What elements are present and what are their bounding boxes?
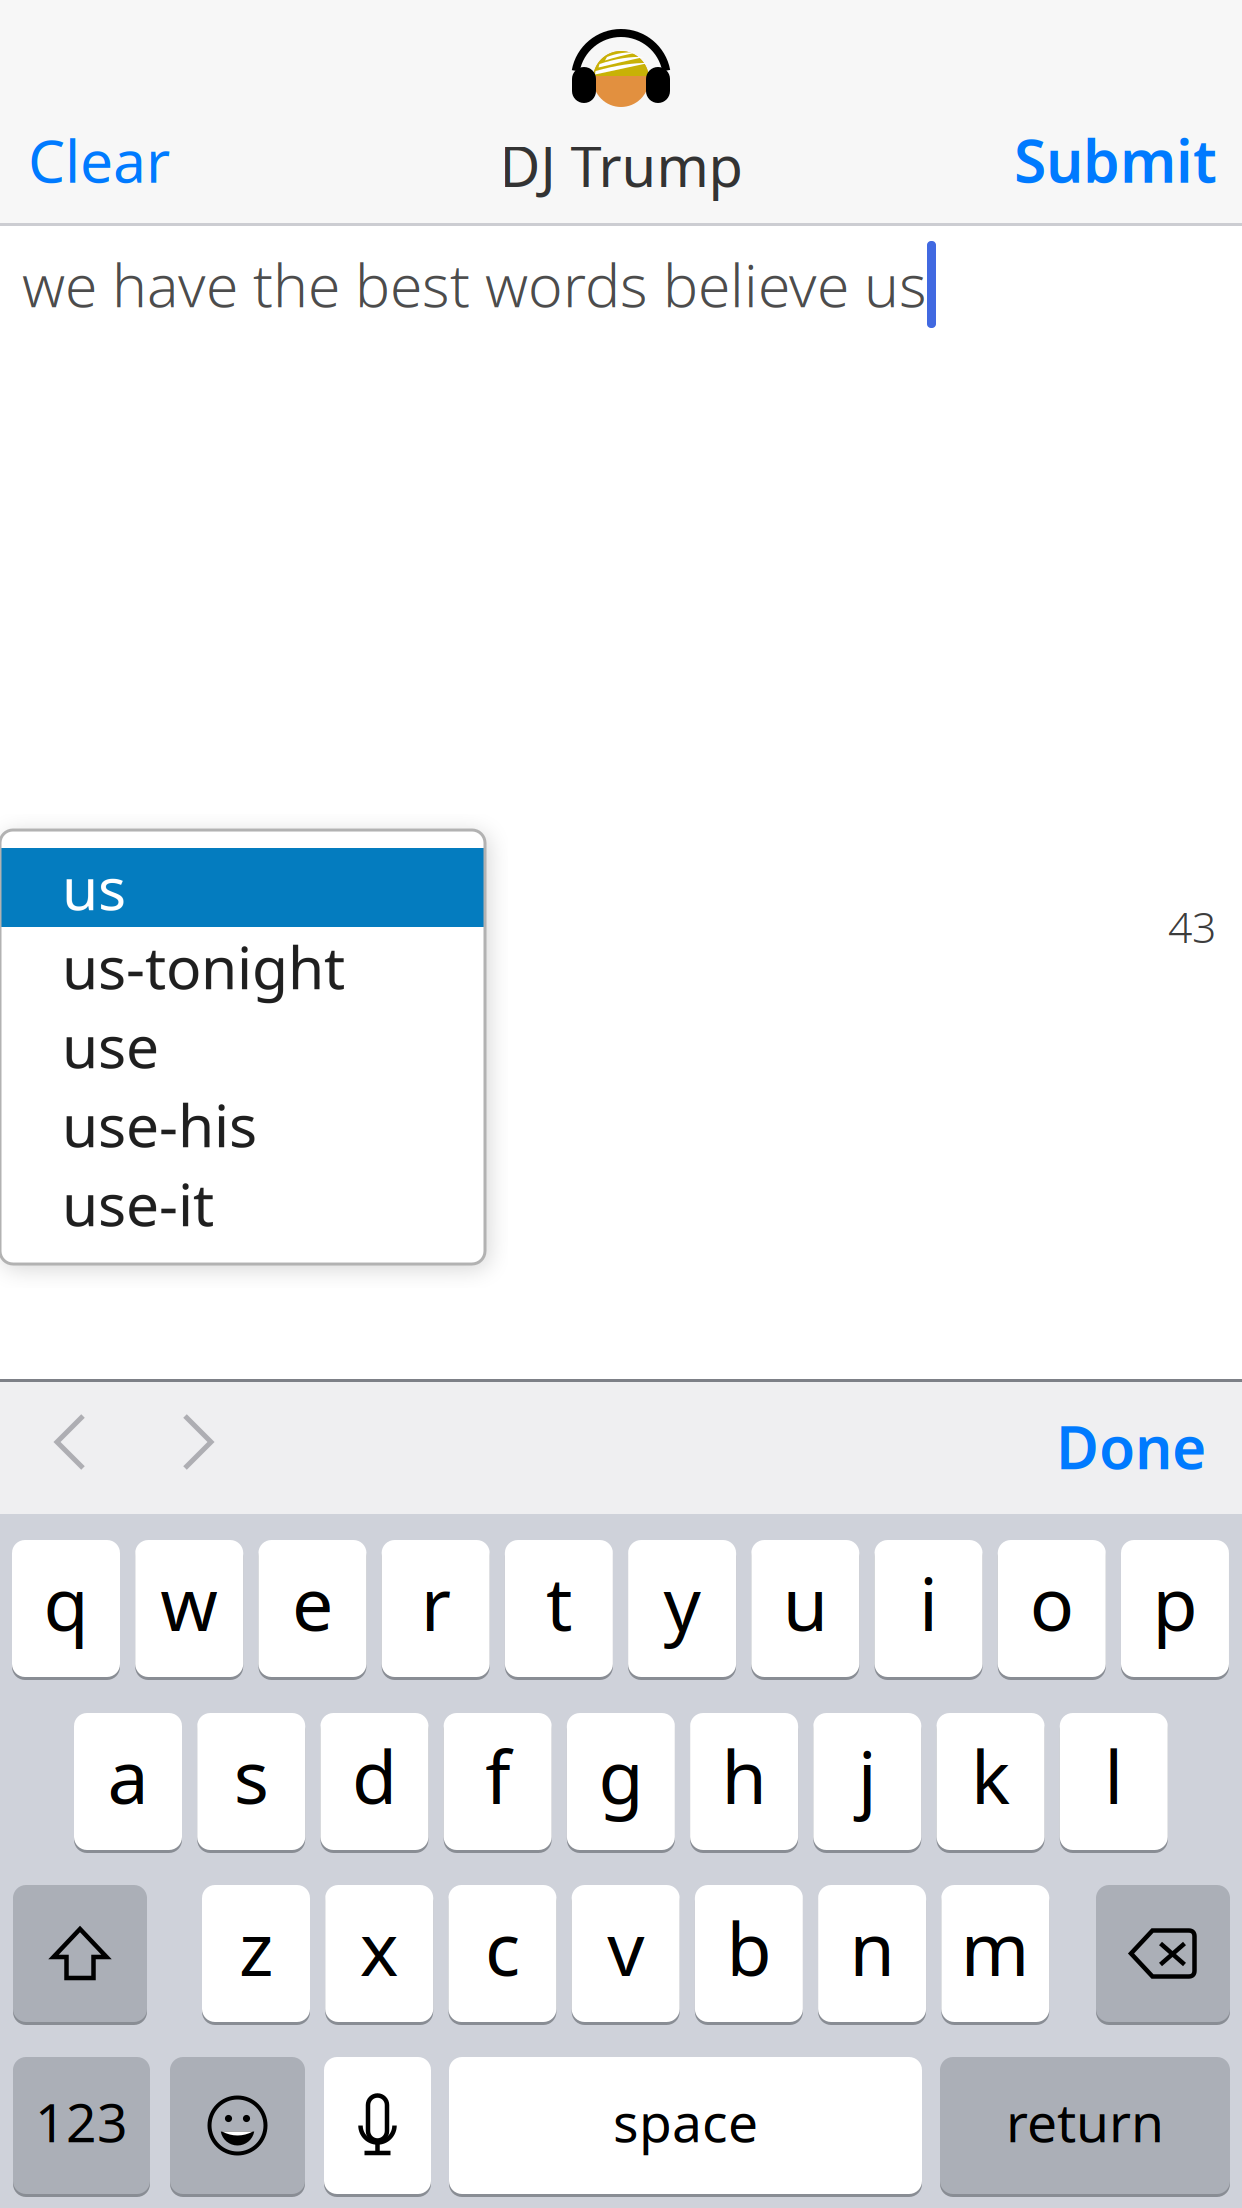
button[interactable]: p (1121, 1538, 1229, 1679)
staticText: q (43, 1554, 88, 1651)
button[interactable]: l (1060, 1711, 1168, 1852)
button[interactable]: h (690, 1711, 798, 1852)
button[interactable]: Previous field (38, 1401, 138, 1536)
staticText: Done (1056, 1407, 1206, 1485)
button[interactable] (1096, 1883, 1230, 2024)
staticText: c (485, 1899, 520, 1996)
button[interactable]: u (751, 1538, 859, 1679)
staticText: h (722, 1727, 767, 1824)
staticText: s (234, 1727, 269, 1824)
staticText: x (360, 1899, 399, 1996)
button[interactable] (13, 1883, 147, 2024)
staticText: m (961, 1899, 1030, 1996)
staticText: k (971, 1727, 1010, 1824)
button[interactable]: use-his (0, 1085, 485, 1164)
button[interactable]: y (628, 1538, 736, 1679)
button[interactable] (170, 2055, 305, 2196)
button[interactable]: f (444, 1711, 552, 1852)
button[interactable]: s (197, 1711, 305, 1852)
button[interactable] (324, 2055, 431, 2196)
staticText: r (421, 1554, 451, 1651)
staticText: i (919, 1554, 938, 1651)
button[interactable]: z (202, 1883, 310, 2024)
button[interactable]: o (998, 1538, 1106, 1679)
button[interactable]: us-tonight (0, 927, 485, 1006)
button[interactable]: t (505, 1538, 613, 1679)
staticText: b (726, 1899, 771, 1996)
button[interactable]: w (135, 1538, 243, 1679)
button[interactable]: b (695, 1883, 803, 2024)
button[interactable]: i (874, 1538, 982, 1679)
button[interactable]: q (12, 1538, 120, 1679)
button[interactable]: 123 (13, 2055, 150, 2196)
staticText: j (858, 1727, 877, 1824)
button[interactable]: x (325, 1883, 433, 2024)
staticText: 43 (1168, 898, 1216, 955)
staticText: t (546, 1554, 572, 1651)
button[interactable]: j (813, 1711, 921, 1852)
button[interactable]: space (449, 2055, 922, 2196)
staticText: use-his (62, 1085, 257, 1163)
button[interactable]: g (567, 1711, 675, 1852)
staticText: z (239, 1899, 273, 1996)
staticText: l (1104, 1727, 1123, 1824)
staticText: us-tonight (62, 927, 345, 1005)
staticText: v (607, 1899, 644, 1996)
staticText: n (850, 1899, 895, 1996)
staticText: f (485, 1727, 510, 1824)
button[interactable]: Clear (0, 110, 198, 210)
button[interactable]: use-it (0, 1164, 485, 1243)
staticText: we have the best words believe us (22, 245, 927, 323)
staticText: 123 (35, 2086, 128, 2157)
button[interactable]: n (818, 1883, 926, 2024)
staticText: w (160, 1554, 218, 1651)
staticText: DJ Trump (499, 128, 742, 202)
button[interactable]: r (382, 1538, 490, 1679)
button[interactable]: e (258, 1538, 366, 1679)
button[interactable]: m (941, 1883, 1049, 2024)
button[interactable]: Done (1016, 1379, 1242, 1514)
staticText: o (1030, 1554, 1074, 1651)
button[interactable]: use (0, 1006, 485, 1085)
button[interactable]: v (572, 1883, 680, 2024)
button[interactable]: k (936, 1711, 1044, 1852)
staticText: Clear (28, 121, 170, 199)
button[interactable]: Submit (986, 110, 1242, 210)
staticText: p (1152, 1554, 1197, 1651)
button[interactable]: d (320, 1711, 428, 1852)
button[interactable]: Next field (165, 1401, 265, 1536)
staticText: e (292, 1554, 333, 1651)
staticText: space (613, 2086, 758, 2157)
staticText: use (62, 1006, 159, 1084)
staticText: use-it (62, 1164, 214, 1242)
staticText: a (107, 1727, 148, 1824)
button[interactable]: c (448, 1883, 556, 2024)
staticText: y (664, 1554, 701, 1651)
staticText: d (352, 1727, 397, 1824)
button[interactable]: return (940, 2055, 1230, 2196)
staticText: return (1006, 2086, 1164, 2157)
button[interactable]: a (74, 1711, 182, 1852)
button[interactable]: us (0, 848, 485, 927)
staticText: Submit (1014, 121, 1217, 199)
staticText: us (62, 848, 126, 926)
staticText: u (783, 1554, 828, 1651)
staticText: g (598, 1727, 643, 1824)
